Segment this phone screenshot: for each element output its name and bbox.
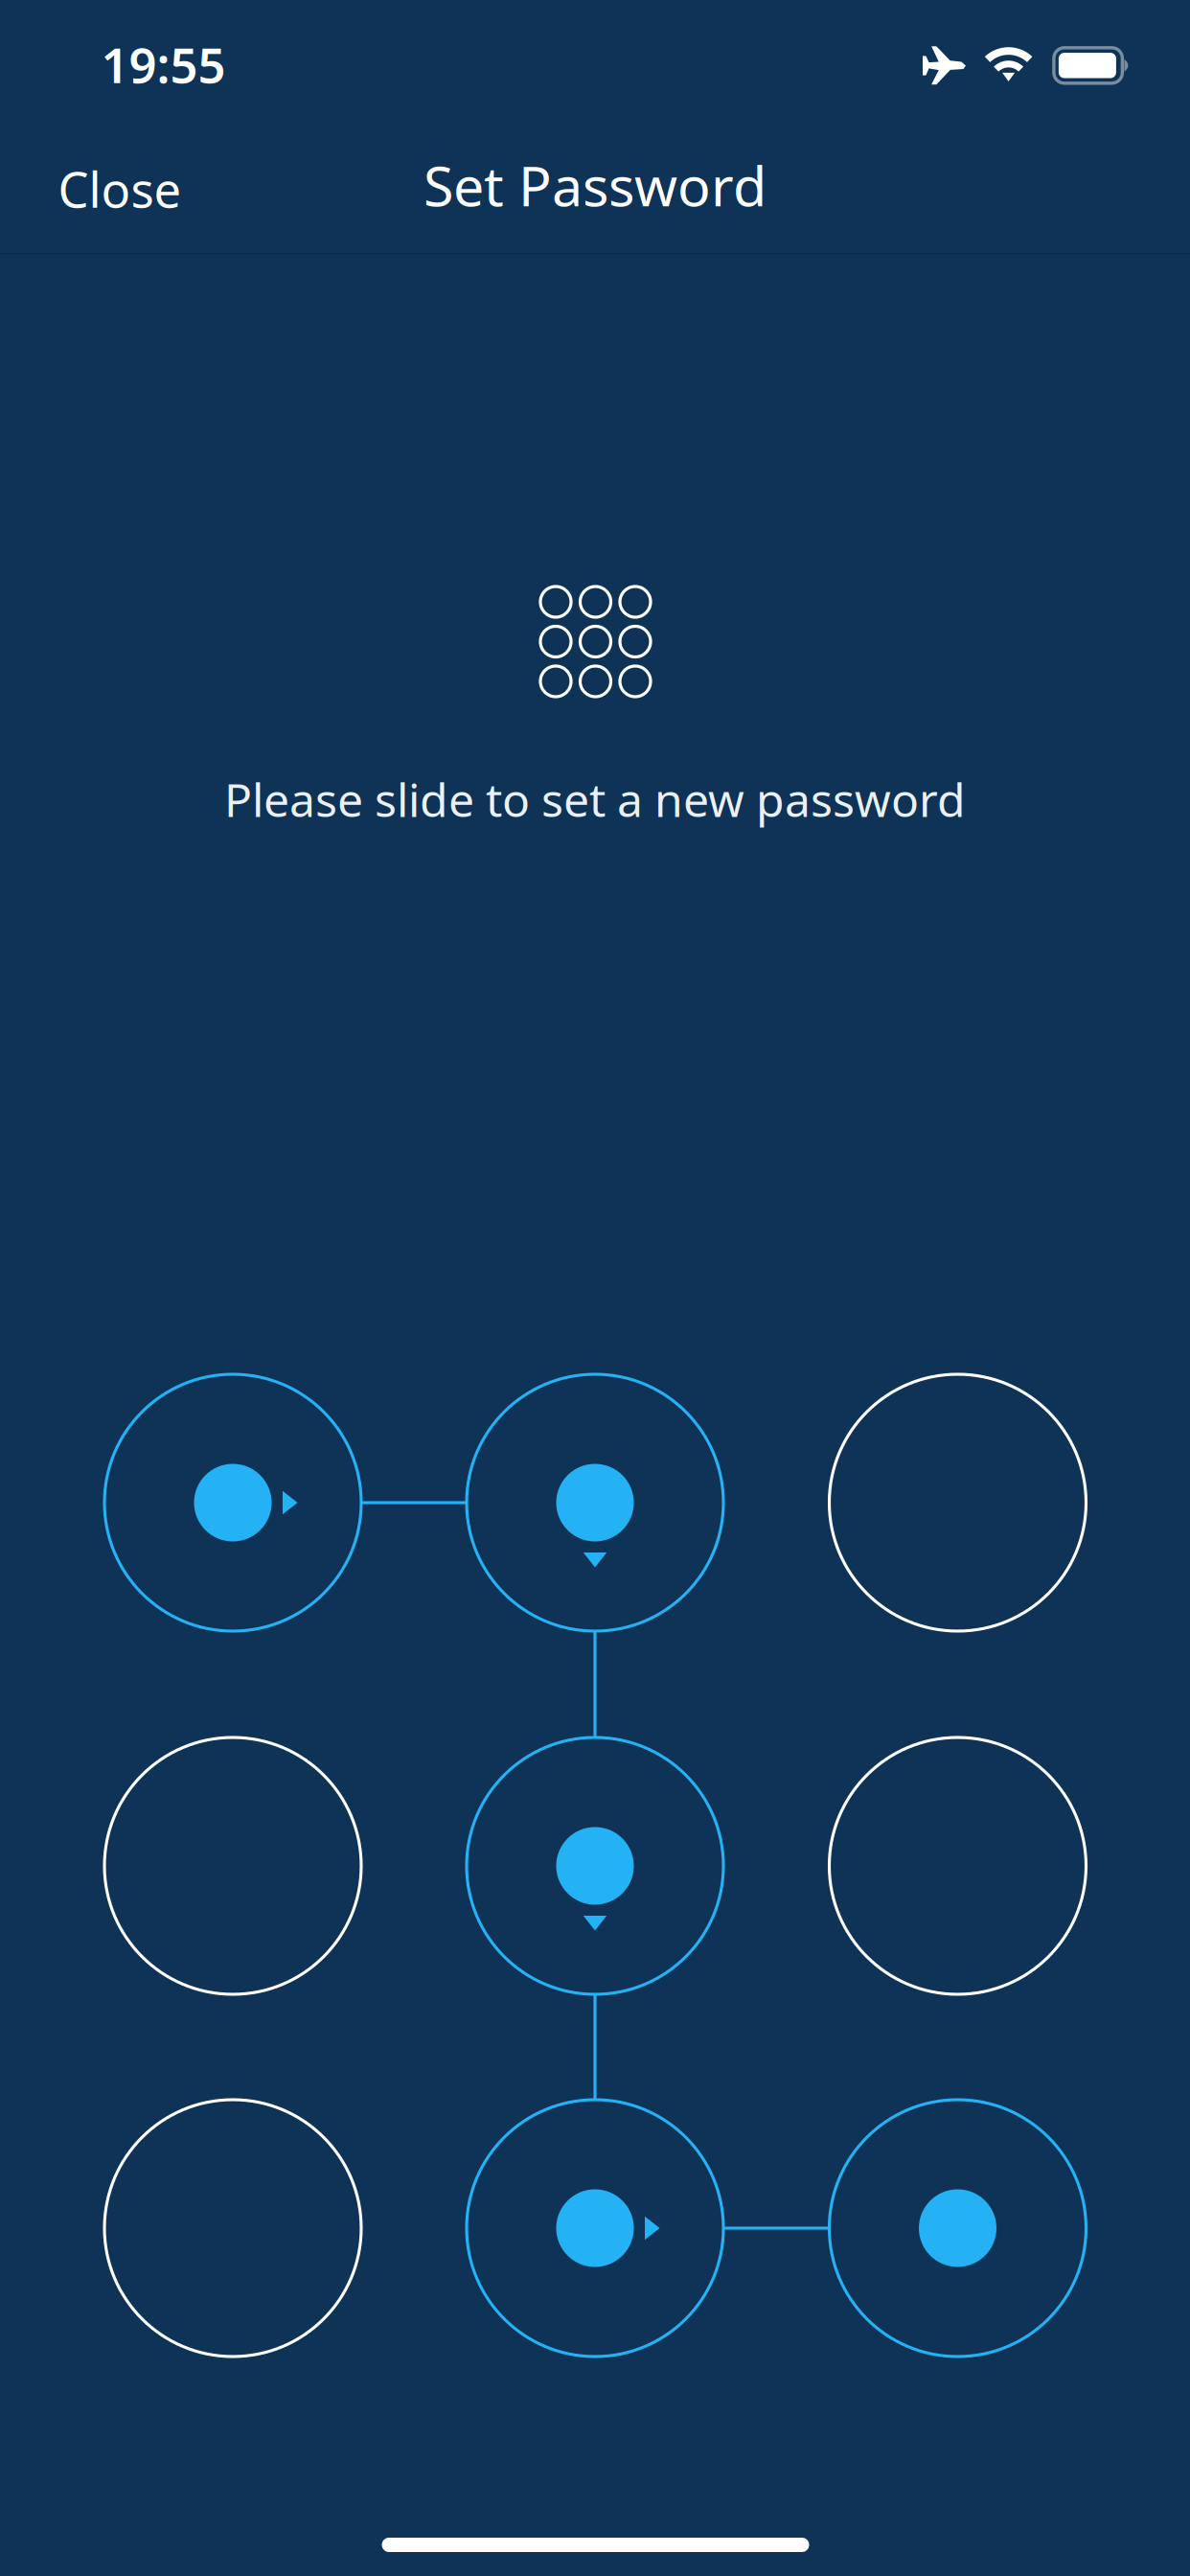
staticText: Please slide to set a new password bbox=[224, 769, 966, 830]
staticText: Close bbox=[58, 157, 182, 221]
staticText: Set Password bbox=[423, 148, 767, 221]
button[interactable]: Close bbox=[10, 136, 230, 241]
staticText: 19:55 bbox=[101, 32, 226, 97]
